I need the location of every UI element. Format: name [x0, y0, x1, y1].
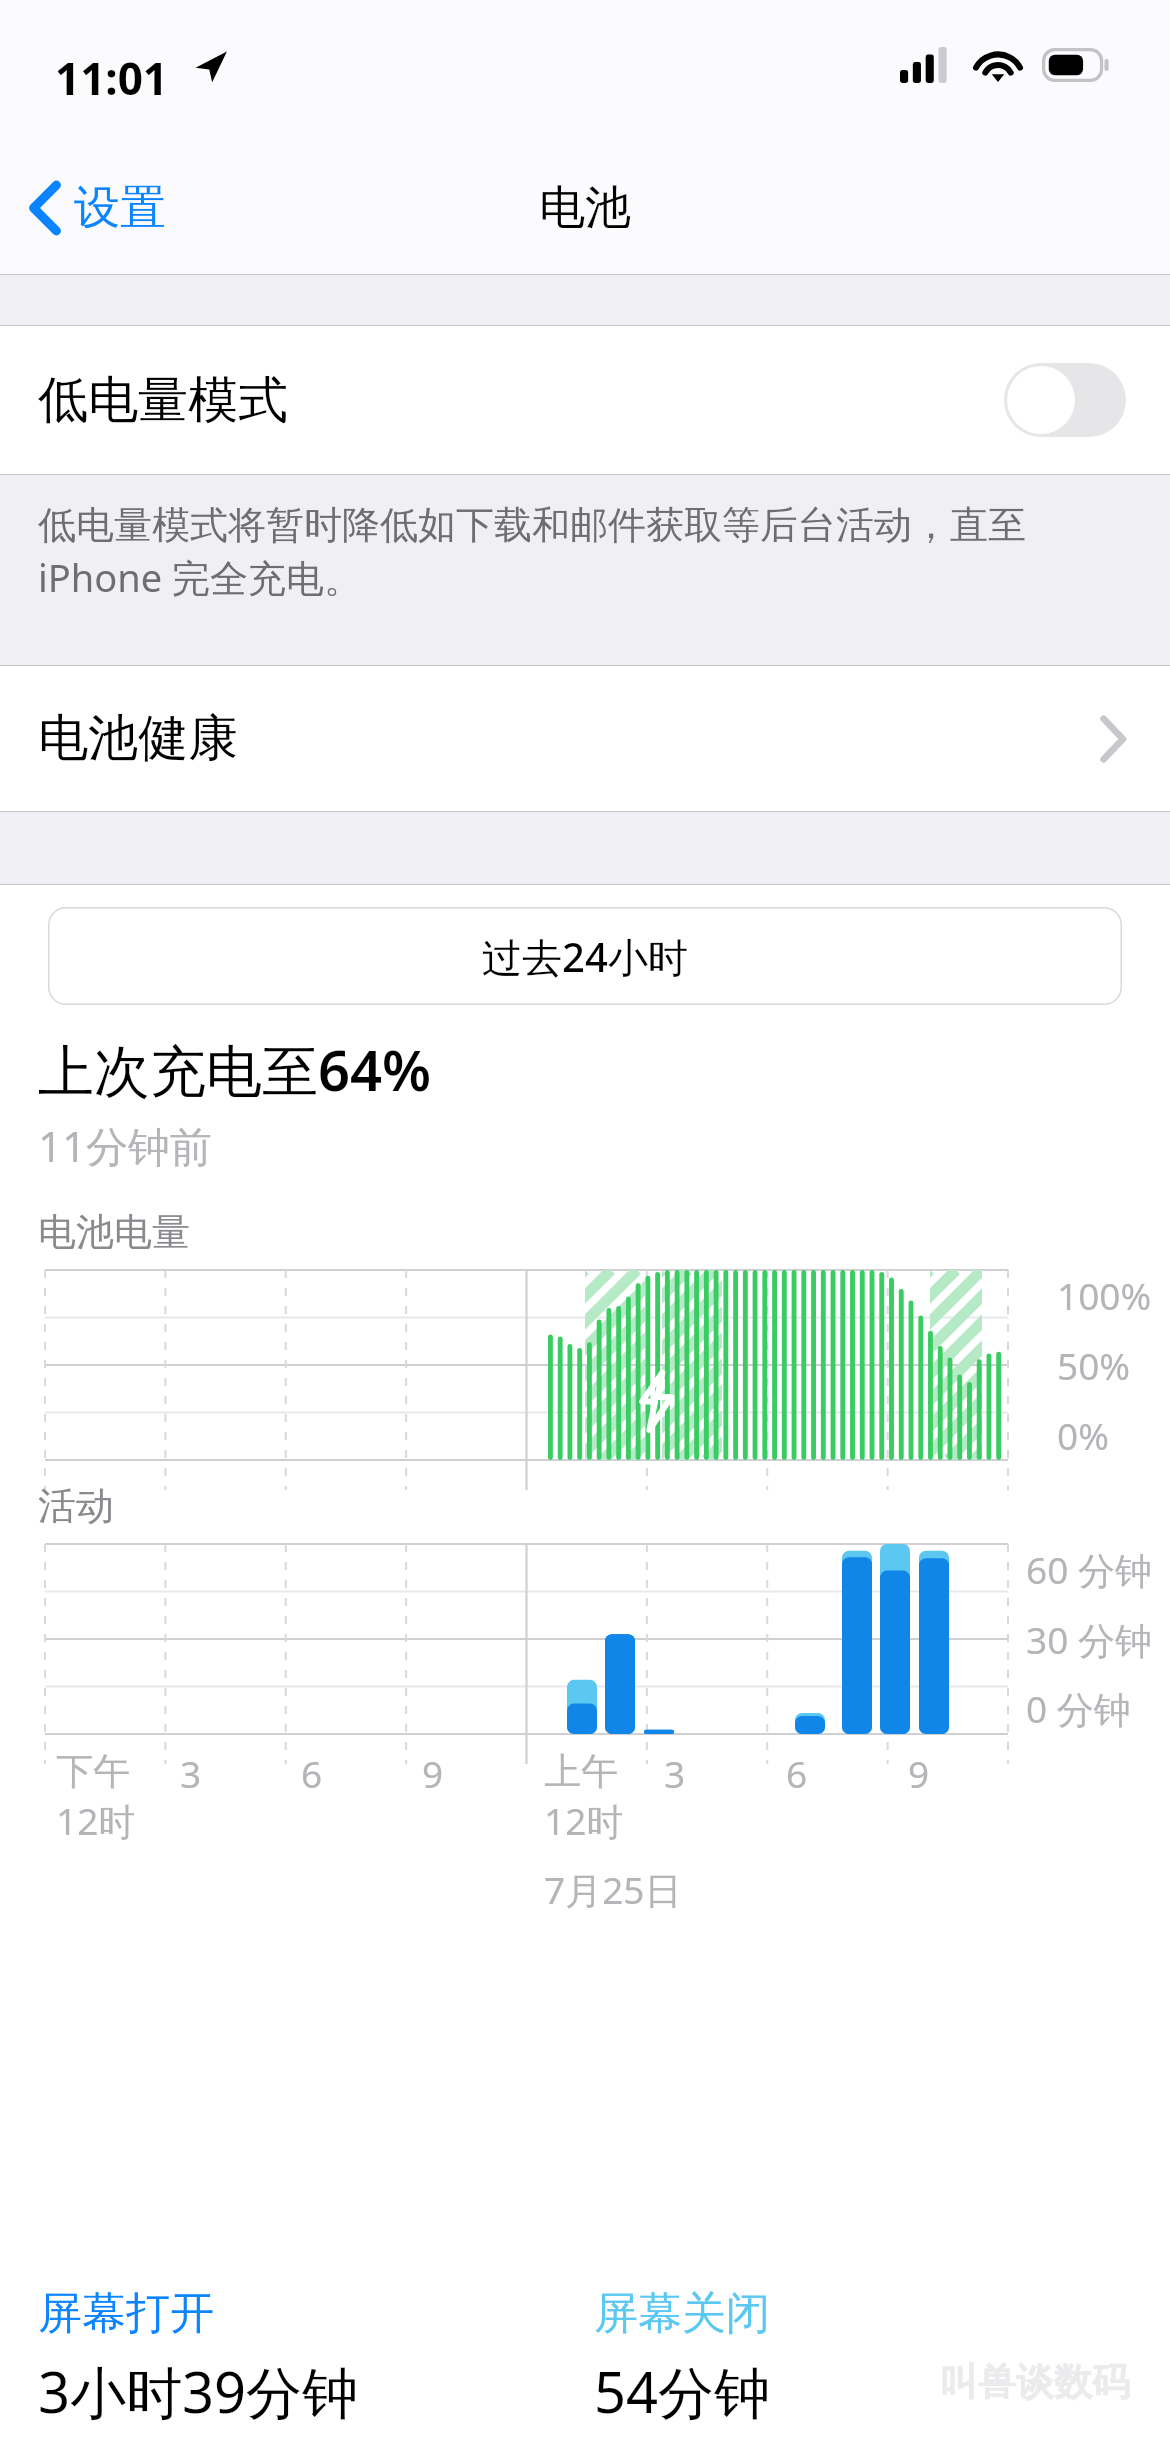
staticText: 9 — [908, 1748, 930, 1798]
staticText: 12时 — [56, 1795, 136, 1846]
button[interactable]: 设置 — [0, 165, 186, 251]
staticText: 0 分钟 — [1026, 1683, 1131, 1734]
button[interactable]: 电池健康 — [0, 666, 1170, 811]
staticText: 活动 — [38, 1482, 114, 1530]
staticText: 11分钟前 — [38, 1117, 213, 1174]
staticText: 54分钟 — [594, 2353, 771, 2429]
staticText: 0% — [1057, 1410, 1109, 1460]
staticText: 12时 — [544, 1795, 624, 1846]
staticText: 低电量模式 — [38, 369, 288, 432]
staticText: 6 — [786, 1748, 808, 1798]
staticText: 电池 — [539, 179, 631, 237]
staticText: 设置 — [74, 179, 166, 237]
staticText: 3 — [180, 1748, 202, 1798]
button[interactable]: 过去24小时 — [48, 907, 1122, 1005]
staticText: 上次充电至64% — [38, 1031, 432, 1107]
staticText: 60 分钟 — [1026, 1544, 1152, 1595]
staticText: 叫兽谈数码 — [940, 2358, 1130, 2406]
staticText: 50% — [1057, 1340, 1131, 1390]
staticText: 电池健康 — [38, 707, 238, 770]
staticText: 屏幕打开 — [38, 2286, 214, 2341]
staticText: 11:01 — [55, 48, 169, 108]
button[interactable]: 屏幕打开 — [38, 2286, 371, 2429]
button[interactable]: 屏幕关闭 — [594, 2286, 783, 2429]
other: 打开 电池健康 — [1100, 716, 1126, 762]
staticText: 30 分钟 — [1026, 1614, 1152, 1665]
staticText: 下午 — [56, 1748, 130, 1795]
staticText: 6 — [301, 1748, 323, 1798]
staticText: 上午 — [544, 1748, 618, 1795]
staticText: 过去24小时 — [482, 929, 688, 984]
button[interactable]: 低电量模式 开关 — [1004, 363, 1126, 437]
staticText: 3 — [664, 1748, 686, 1798]
staticText: 7月25日 — [544, 1864, 682, 1915]
staticText: 3小时39分钟 — [38, 2353, 359, 2429]
staticText: 9 — [422, 1748, 444, 1798]
button[interactable]: 低电量模式 — [0, 326, 1170, 474]
staticText: 100% — [1057, 1270, 1152, 1320]
staticText: 低电量模式将暂时降低如下载和邮件获取等后台活动，直至 iPhone 完全充电。 — [38, 497, 1128, 603]
staticText: 电池电量 — [38, 1208, 190, 1256]
staticText: 屏幕关闭 — [594, 2286, 770, 2341]
